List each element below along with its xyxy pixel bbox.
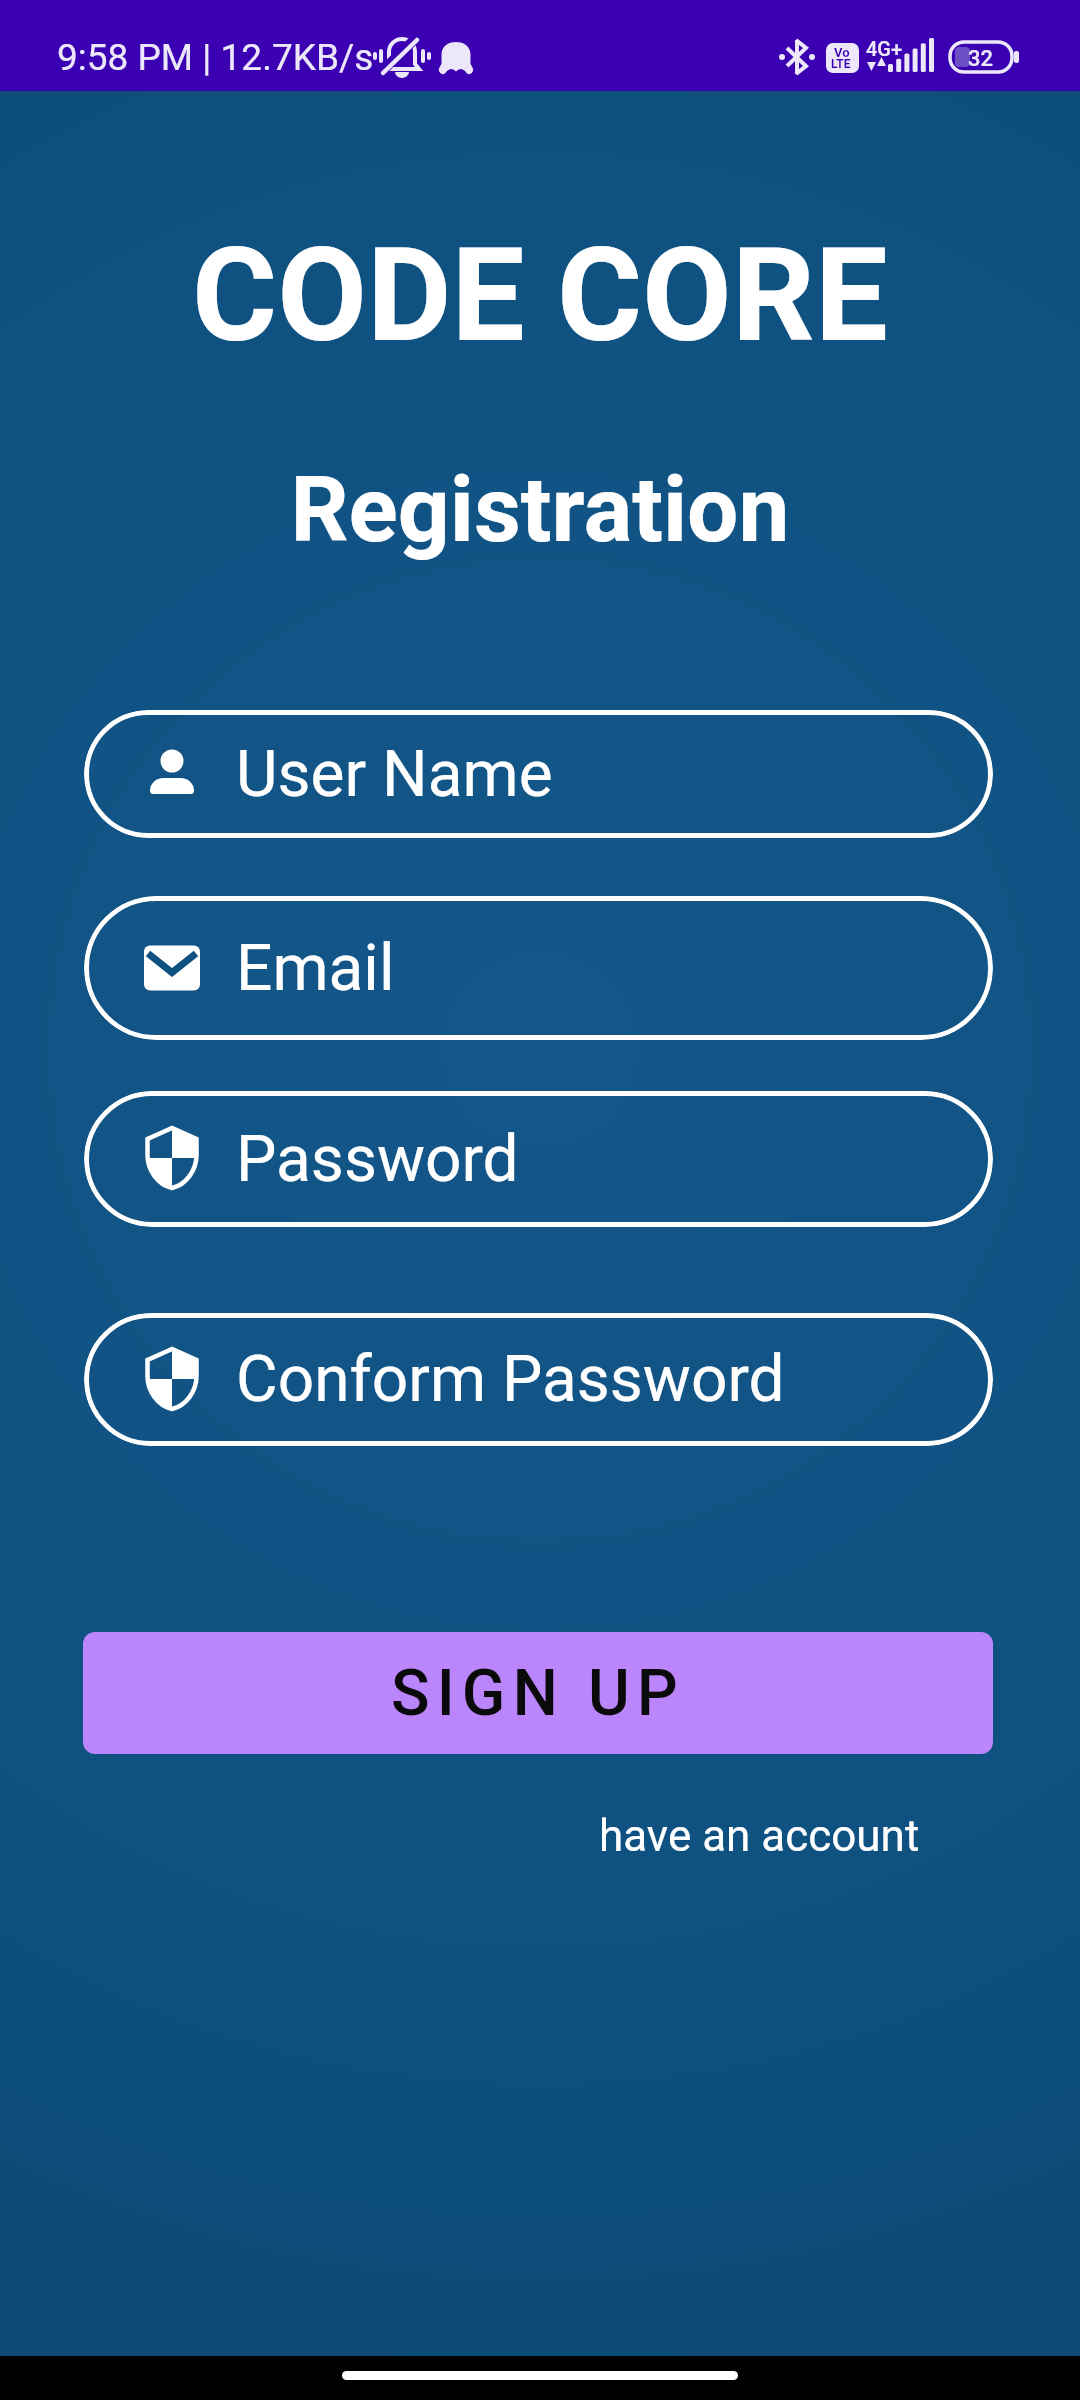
staticText: 32	[968, 46, 994, 72]
staticText: Vo	[834, 45, 850, 60]
staticText: Registration	[0, 457, 1080, 564]
staticText: 4G+	[866, 37, 903, 60]
staticText: LTE	[831, 57, 851, 71]
button[interactable]: Conform Password	[84, 1313, 993, 1446]
button[interactable]: SIGN UP	[83, 1632, 993, 1754]
button[interactable]: have an account	[599, 1810, 920, 1862]
staticText: Conform Password	[236, 1342, 785, 1417]
staticText: User Name	[236, 737, 553, 812]
staticText: Password	[236, 1122, 519, 1197]
staticText: 9:58 PM | 12.7KB/s	[57, 36, 374, 79]
staticText: SIGN UP	[391, 1656, 685, 1731]
staticText: CODE CORE	[0, 219, 1080, 371]
staticText: Email	[236, 931, 395, 1006]
button[interactable]: Email	[84, 896, 993, 1040]
button[interactable]: Password	[84, 1091, 993, 1227]
button[interactable]: User Name	[84, 710, 993, 838]
